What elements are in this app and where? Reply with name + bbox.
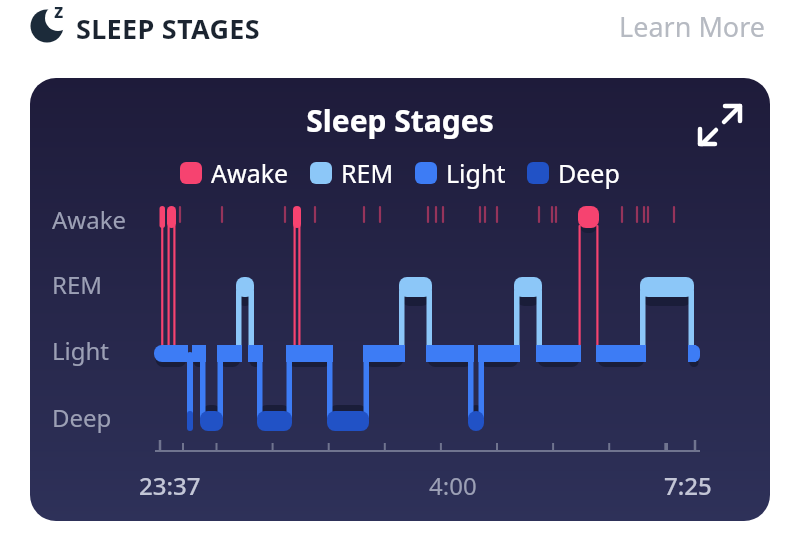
button[interactable]: Light: [415, 156, 506, 190]
button[interactable]: Deep: [527, 156, 620, 190]
staticText: Deep: [558, 156, 620, 190]
staticText: Light: [446, 156, 506, 190]
button[interactable]: REM: [310, 156, 394, 190]
staticText: Light: [52, 334, 110, 367]
staticText: REM: [52, 268, 103, 301]
staticText: z: [54, 0, 64, 24]
staticText: Deep: [52, 401, 112, 434]
staticText: 23:37: [139, 469, 201, 502]
staticText: Awake: [52, 203, 127, 236]
staticText: Awake: [211, 156, 289, 190]
button[interactable]: Sleep Stages: [30, 78, 770, 521]
button[interactable]: Awake: [180, 156, 289, 190]
staticText: 4:00: [429, 469, 477, 502]
staticText: Learn More: [619, 8, 766, 45]
staticText: SLEEP STAGES: [76, 10, 260, 47]
button[interactable]: [692, 94, 748, 150]
staticText: REM: [341, 156, 394, 190]
staticText: Sleep Stages: [30, 100, 770, 141]
button[interactable]: Learn More: [619, 8, 766, 45]
staticText: 7:25: [664, 469, 712, 502]
